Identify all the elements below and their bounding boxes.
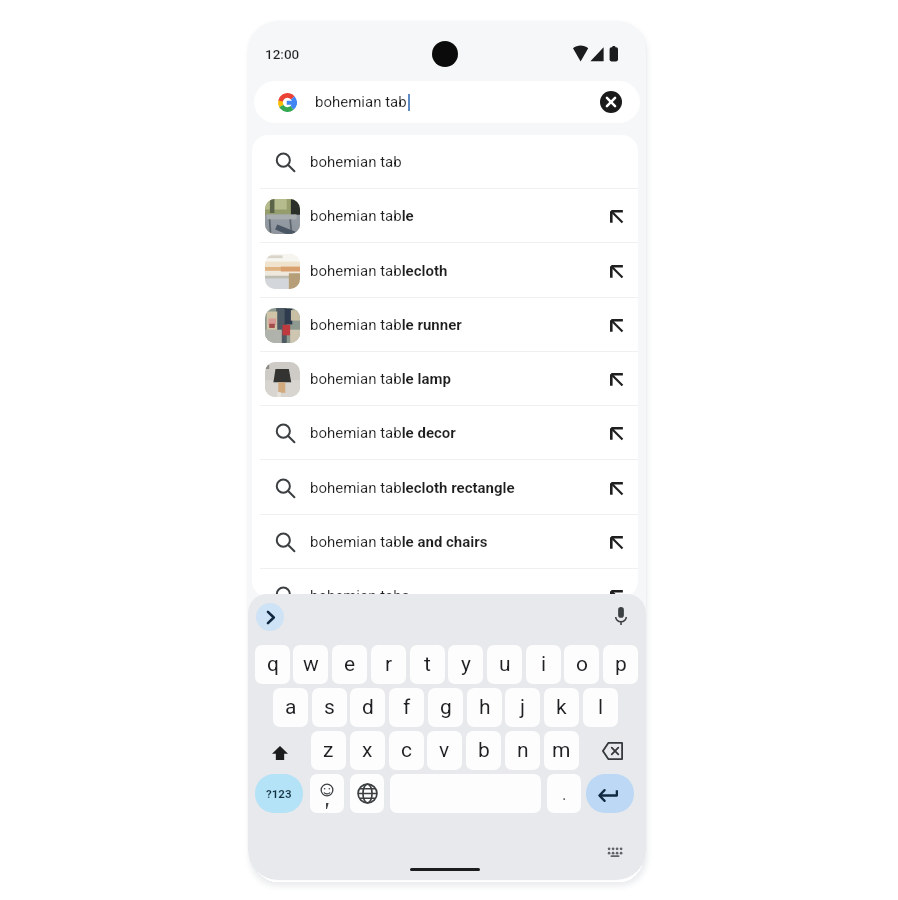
button[interactable]: n [505, 731, 540, 770]
staticText: bohemian table runner [310, 316, 462, 334]
staticText: bohemian tablecloth rectangle [310, 479, 515, 497]
button[interactable]: f [389, 688, 424, 727]
button[interactable]: b [466, 731, 501, 770]
staticText: p [615, 652, 627, 677]
button[interactable]: q [255, 645, 290, 684]
staticText: t [424, 652, 431, 677]
button[interactable]: m [544, 731, 579, 770]
staticText: bohemian table [310, 207, 414, 225]
button[interactable]: bohemian table [252, 189, 638, 243]
staticText: f [403, 695, 411, 720]
staticText: i [541, 652, 547, 677]
button[interactable]: e [332, 645, 367, 684]
button[interactable]: Insert suggestion [601, 473, 631, 503]
staticText: z [323, 738, 334, 763]
staticText: bohemian table lamp [310, 370, 451, 388]
button[interactable]: z [311, 731, 346, 770]
button[interactable]: bohemian table decor [252, 406, 638, 460]
button[interactable]: Backspace [595, 731, 629, 770]
button[interactable]: h [467, 688, 502, 727]
staticText: . [562, 784, 567, 804]
staticText: y [461, 652, 471, 677]
staticText: ?123 [266, 787, 292, 800]
button[interactable]: bohemian tab [252, 135, 638, 189]
staticText: l [598, 695, 604, 720]
staticText: q [267, 652, 279, 677]
staticText: bohemian table and chairs [310, 533, 488, 551]
button[interactable]: Emoji [310, 774, 344, 813]
staticText: bohemian table decor [310, 424, 456, 442]
button[interactable]: Clear search [600, 91, 622, 113]
staticText: bohemian tab [315, 93, 407, 111]
button[interactable]: x [350, 731, 385, 770]
button[interactable]: Enter [586, 774, 634, 813]
staticText: s [324, 695, 335, 720]
button[interactable]: Insert suggestion [601, 581, 631, 597]
button[interactable]: Switch input method [603, 840, 627, 864]
staticText: b [478, 738, 490, 763]
button[interactable]: v [427, 731, 462, 770]
button[interactable]: Shift [263, 731, 297, 770]
button[interactable]: c [389, 731, 424, 770]
staticText: v [439, 738, 450, 763]
button[interactable]: u [487, 645, 522, 684]
staticText: c [401, 738, 412, 763]
button[interactable]: bohemian tabs [252, 569, 638, 597]
staticText: w [303, 652, 319, 677]
button[interactable]: Insert suggestion [601, 310, 631, 340]
button[interactable]: bohemian tablecloth [252, 244, 638, 298]
button[interactable]: bohemian table runner [252, 298, 638, 352]
staticText: o [576, 652, 588, 677]
staticText: 12:00 [265, 46, 300, 62]
button[interactable]: y [448, 645, 483, 684]
staticText: d [362, 695, 374, 720]
button[interactable]: i [526, 645, 561, 684]
staticText: e [344, 652, 356, 677]
button[interactable]: Change language [350, 774, 384, 813]
staticText: u [499, 652, 511, 677]
button[interactable]: ?123 [255, 774, 303, 813]
button[interactable]: w [293, 645, 328, 684]
button[interactable]: . [547, 774, 581, 813]
button[interactable]: o [564, 645, 599, 684]
staticText: r [385, 652, 393, 677]
staticText: bohemian tab [310, 153, 402, 171]
button[interactable]: More suggestions [256, 603, 284, 631]
button[interactable]: d [350, 688, 385, 727]
button[interactable]: a [273, 688, 308, 727]
button[interactable]: Voice search [609, 604, 633, 628]
staticText: k [556, 695, 567, 720]
staticText: bohemian tabs [310, 587, 410, 597]
button[interactable]: t [410, 645, 445, 684]
staticText: n [517, 738, 529, 763]
staticText: m [552, 738, 571, 763]
button[interactable]: Insert suggestion [601, 256, 631, 286]
button[interactable]: Insert suggestion [601, 364, 631, 394]
button[interactable]: bohemian table lamp [252, 352, 638, 406]
staticText: a [285, 695, 297, 720]
button[interactable]: Insert suggestion [601, 527, 631, 557]
button[interactable]: p [603, 645, 638, 684]
staticText: h [479, 695, 491, 720]
button[interactable]: k [544, 688, 579, 727]
staticText: j [520, 695, 526, 720]
staticText: x [362, 738, 373, 763]
button[interactable]: bohemian tablecloth rectangle [252, 461, 638, 515]
button[interactable]: bohemian table and chairs [252, 515, 638, 569]
button[interactable]: Insert suggestion [601, 201, 631, 231]
staticText: g [440, 695, 452, 720]
staticText: bohemian tablecloth [310, 262, 448, 280]
button[interactable]: bohemian tab [254, 81, 640, 123]
button[interactable]: l [583, 688, 618, 727]
button[interactable]: g [428, 688, 463, 727]
button[interactable]: Insert suggestion [601, 418, 631, 448]
button[interactable]: s [312, 688, 347, 727]
button[interactable]: r [371, 645, 406, 684]
button[interactable]: j [505, 688, 540, 727]
